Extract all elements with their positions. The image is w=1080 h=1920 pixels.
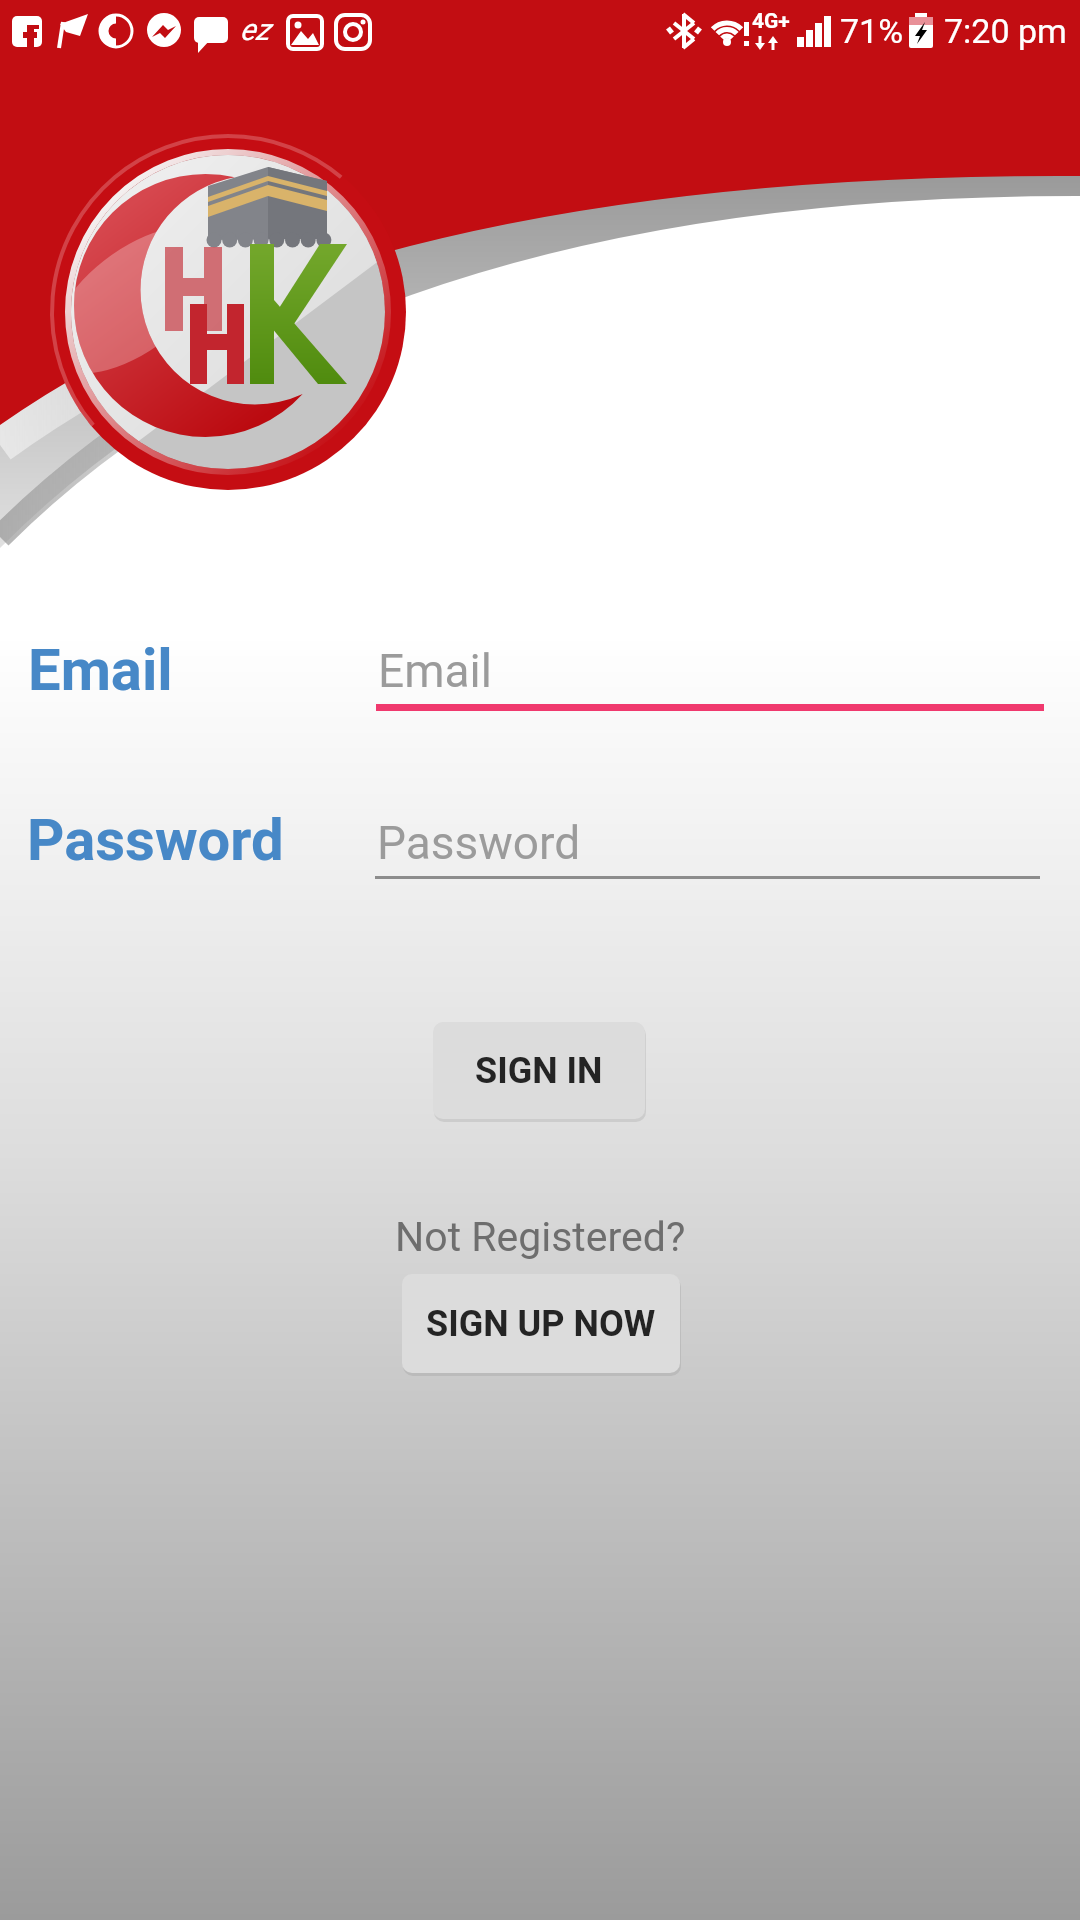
staticText: Password bbox=[27, 806, 284, 874]
staticText: ez bbox=[240, 12, 270, 47]
staticText: SIGN UP NOW bbox=[426, 1303, 656, 1345]
button[interactable]: SIGN IN bbox=[433, 1022, 645, 1119]
button[interactable]: Password bbox=[375, 802, 1043, 882]
staticText: Not Registered? bbox=[395, 1213, 686, 1261]
staticText: 7:20 pm bbox=[944, 11, 1067, 51]
button[interactable]: SIGN UP NOW bbox=[402, 1274, 680, 1373]
button[interactable]: Email bbox=[376, 630, 1044, 712]
staticText: Email bbox=[378, 644, 492, 698]
staticText: 4G+ bbox=[752, 9, 790, 34]
staticText: Password bbox=[377, 816, 581, 870]
staticText: 71% bbox=[840, 11, 904, 51]
staticText: SIGN IN bbox=[475, 1050, 603, 1092]
staticText: Email bbox=[28, 636, 173, 704]
